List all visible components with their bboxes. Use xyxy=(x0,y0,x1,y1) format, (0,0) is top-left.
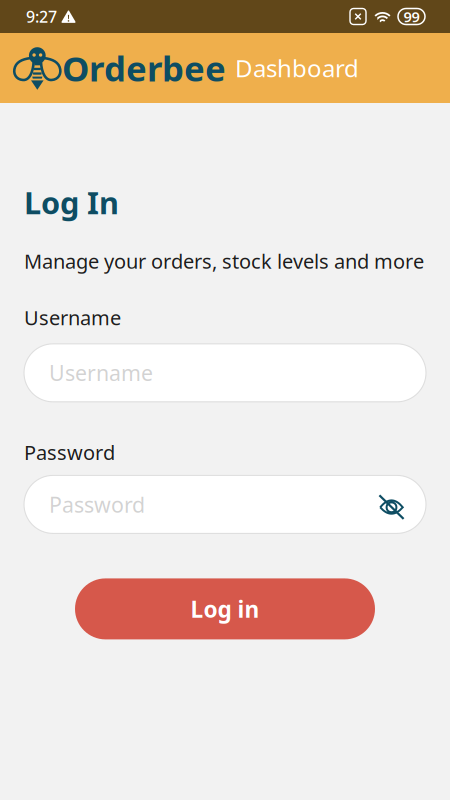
staticText: 9:27 xyxy=(26,6,57,27)
staticText: Orderbee xyxy=(62,45,226,91)
staticText: Password xyxy=(24,439,115,465)
staticText: Username xyxy=(24,304,121,331)
button[interactable]: Password xyxy=(24,475,376,533)
staticText: Username xyxy=(49,359,153,387)
button[interactable]: Log in xyxy=(75,578,375,639)
staticText: Log in xyxy=(190,594,259,624)
staticText: Password xyxy=(49,490,145,518)
staticText: Manage your orders, stock levels and mor… xyxy=(24,248,424,274)
staticText: Log In xyxy=(24,182,119,223)
button[interactable]: Show password xyxy=(376,476,426,533)
staticText: Dashboard xyxy=(235,52,359,84)
staticText: 99 xyxy=(403,7,419,26)
button[interactable]: Username xyxy=(24,344,426,402)
